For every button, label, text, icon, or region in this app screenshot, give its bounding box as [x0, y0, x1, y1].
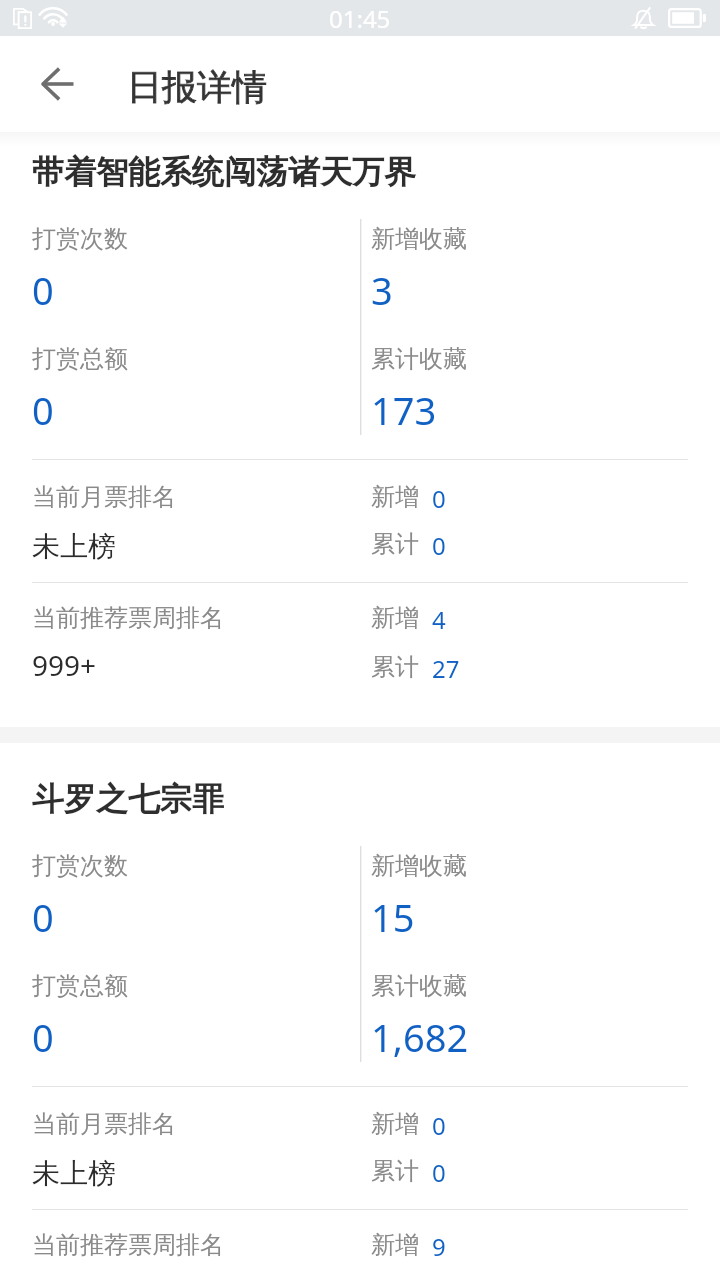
- staticText: 未上榜: [32, 1156, 116, 1191]
- button[interactable]: 打赏总额: [32, 971, 360, 1063]
- button[interactable]: 当前月票排名: [0, 460, 720, 582]
- staticText: 0: [432, 1156, 446, 1186]
- button[interactable]: 带着智能系统闯荡诸天万界: [0, 152, 720, 192]
- button[interactable]: 新增收藏: [371, 851, 720, 943]
- staticText: 0: [432, 482, 446, 512]
- staticText: 累计收藏: [371, 971, 467, 1001]
- button[interactable]: 累计收藏: [371, 344, 720, 436]
- staticText: 新增收藏: [371, 224, 467, 254]
- staticText: 新增: [371, 603, 419, 633]
- button[interactable]: 当前月票排名: [0, 1087, 720, 1209]
- button[interactable]: 累计收藏: [371, 971, 720, 1063]
- staticText: 0: [32, 891, 54, 943]
- staticText: 999+: [32, 646, 97, 684]
- staticText: 27: [432, 652, 460, 682]
- staticText: 01:45: [329, 2, 391, 35]
- staticText: 当前推荐票周排名: [32, 603, 224, 633]
- staticText: 新增: [371, 482, 419, 512]
- staticText: 未上榜: [32, 529, 116, 564]
- staticText: 打赏总额: [32, 971, 128, 1001]
- staticText: 新增: [371, 1109, 419, 1139]
- staticText: 4: [432, 603, 446, 633]
- button[interactable]: 新增收藏: [371, 224, 720, 316]
- staticText: 累计收藏: [371, 344, 467, 374]
- button[interactable]: Back: [21, 48, 93, 120]
- staticText: 累计: [371, 652, 419, 682]
- staticText: 带着智能系统闯荡诸天万界: [32, 152, 416, 192]
- staticText: 0: [32, 384, 54, 436]
- staticText: 打赏次数: [32, 851, 128, 881]
- staticText: 累计: [371, 1156, 419, 1186]
- staticText: 当前月票排名: [32, 482, 176, 512]
- staticText: 0: [432, 529, 446, 559]
- staticText: 打赏次数: [32, 224, 128, 254]
- staticText: 累计: [371, 529, 419, 559]
- staticText: 斗罗之七宗罪: [32, 779, 224, 819]
- staticText: 0: [432, 1109, 446, 1139]
- button[interactable]: 斗罗之七宗罪: [0, 779, 720, 819]
- staticText: 打赏总额: [32, 344, 128, 374]
- staticText: 0: [32, 264, 54, 316]
- staticText: 3: [371, 264, 393, 316]
- staticText: 当前推荐票周排名: [32, 1230, 224, 1260]
- staticText: 15: [371, 891, 415, 943]
- staticText: 9: [432, 1230, 446, 1260]
- button[interactable]: 打赏次数: [32, 851, 360, 943]
- button[interactable]: 当前推荐票周排名: [0, 1210, 720, 1280]
- staticText: 新增收藏: [371, 851, 467, 881]
- staticText: 新增: [371, 1230, 419, 1260]
- button[interactable]: 打赏次数: [32, 224, 360, 316]
- staticText: 0: [32, 1011, 54, 1063]
- staticText: 173: [371, 384, 437, 436]
- staticText: 当前月票排名: [32, 1109, 176, 1139]
- staticText: 日报详情: [127, 65, 267, 109]
- button[interactable]: 打赏总额: [32, 344, 360, 436]
- staticText: 1,682: [371, 1011, 469, 1063]
- button[interactable]: 当前推荐票周排名: [0, 583, 720, 727]
- staticText: 日报详情: [127, 65, 267, 109]
